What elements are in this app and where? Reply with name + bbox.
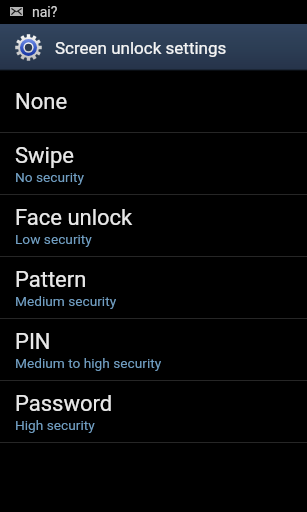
staticText: Medium to high security: [15, 355, 162, 371]
button[interactable]: Swipe: [0, 133, 307, 194]
staticText: Medium security: [15, 293, 117, 309]
staticText: Face unlock: [15, 205, 133, 231]
staticText: No security: [15, 169, 84, 185]
staticText: Pattern: [15, 267, 87, 293]
staticText: High security: [15, 417, 95, 433]
other: New mail notification: [10, 7, 23, 16]
staticText: Low security: [15, 231, 92, 247]
staticText: PIN: [15, 329, 51, 355]
button[interactable]: None: [0, 71, 307, 132]
button[interactable]: PIN: [0, 319, 307, 380]
button[interactable]: Face unlock: [0, 195, 307, 256]
staticText: nai?: [32, 4, 58, 20]
button[interactable]: Pattern: [0, 257, 307, 318]
staticText: Swipe: [15, 143, 74, 169]
button[interactable]: Password: [0, 381, 307, 442]
button[interactable]: Screen unlock settings, navigate up: [0, 24, 307, 71]
staticText: Screen unlock settings: [55, 38, 227, 58]
staticText: None: [15, 89, 68, 115]
staticText: Password: [15, 391, 113, 417]
